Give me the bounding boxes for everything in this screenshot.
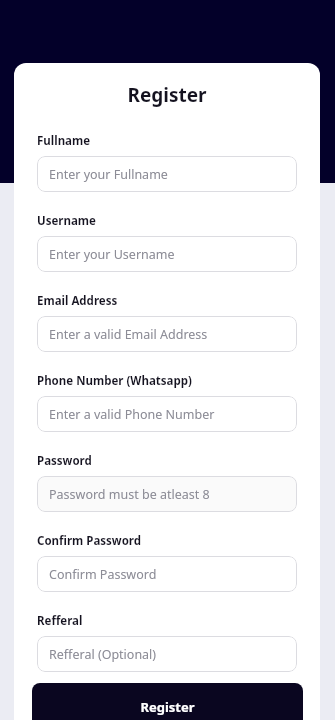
button[interactable]: Enter a valid Email Address: [37, 316, 297, 352]
staticText: Email Address: [37, 293, 118, 309]
staticText: Fullname: [37, 133, 91, 149]
staticText: Password must be atleast 8: [49, 486, 210, 503]
staticText: Refferal: [37, 613, 83, 629]
staticText: Confirm Password: [37, 533, 142, 549]
staticText: Enter your Fullname: [49, 166, 168, 183]
staticText: Enter your Username: [49, 246, 175, 263]
staticText: Register: [140, 698, 195, 716]
staticText: Enter a valid Email Address: [49, 326, 208, 343]
staticText: Password: [37, 453, 92, 469]
staticText: Refferal (Optional): [49, 646, 157, 663]
staticText: Enter a valid Phone Number: [49, 406, 215, 423]
button[interactable]: Register: [32, 683, 303, 720]
button[interactable]: Enter a valid Phone Number: [37, 396, 297, 432]
button[interactable]: Enter your Username: [37, 236, 297, 272]
staticText: Username: [37, 213, 96, 229]
button[interactable]: Password must be atleast 8: [37, 476, 297, 512]
button[interactable]: Enter your Fullname: [37, 156, 297, 192]
staticText: Confirm Password: [49, 566, 157, 583]
button[interactable]: Refferal (Optional): [37, 636, 297, 672]
staticText: Register: [37, 82, 297, 108]
button[interactable]: Confirm Password: [37, 556, 297, 592]
staticText: Phone Number (Whatsapp): [37, 373, 192, 389]
